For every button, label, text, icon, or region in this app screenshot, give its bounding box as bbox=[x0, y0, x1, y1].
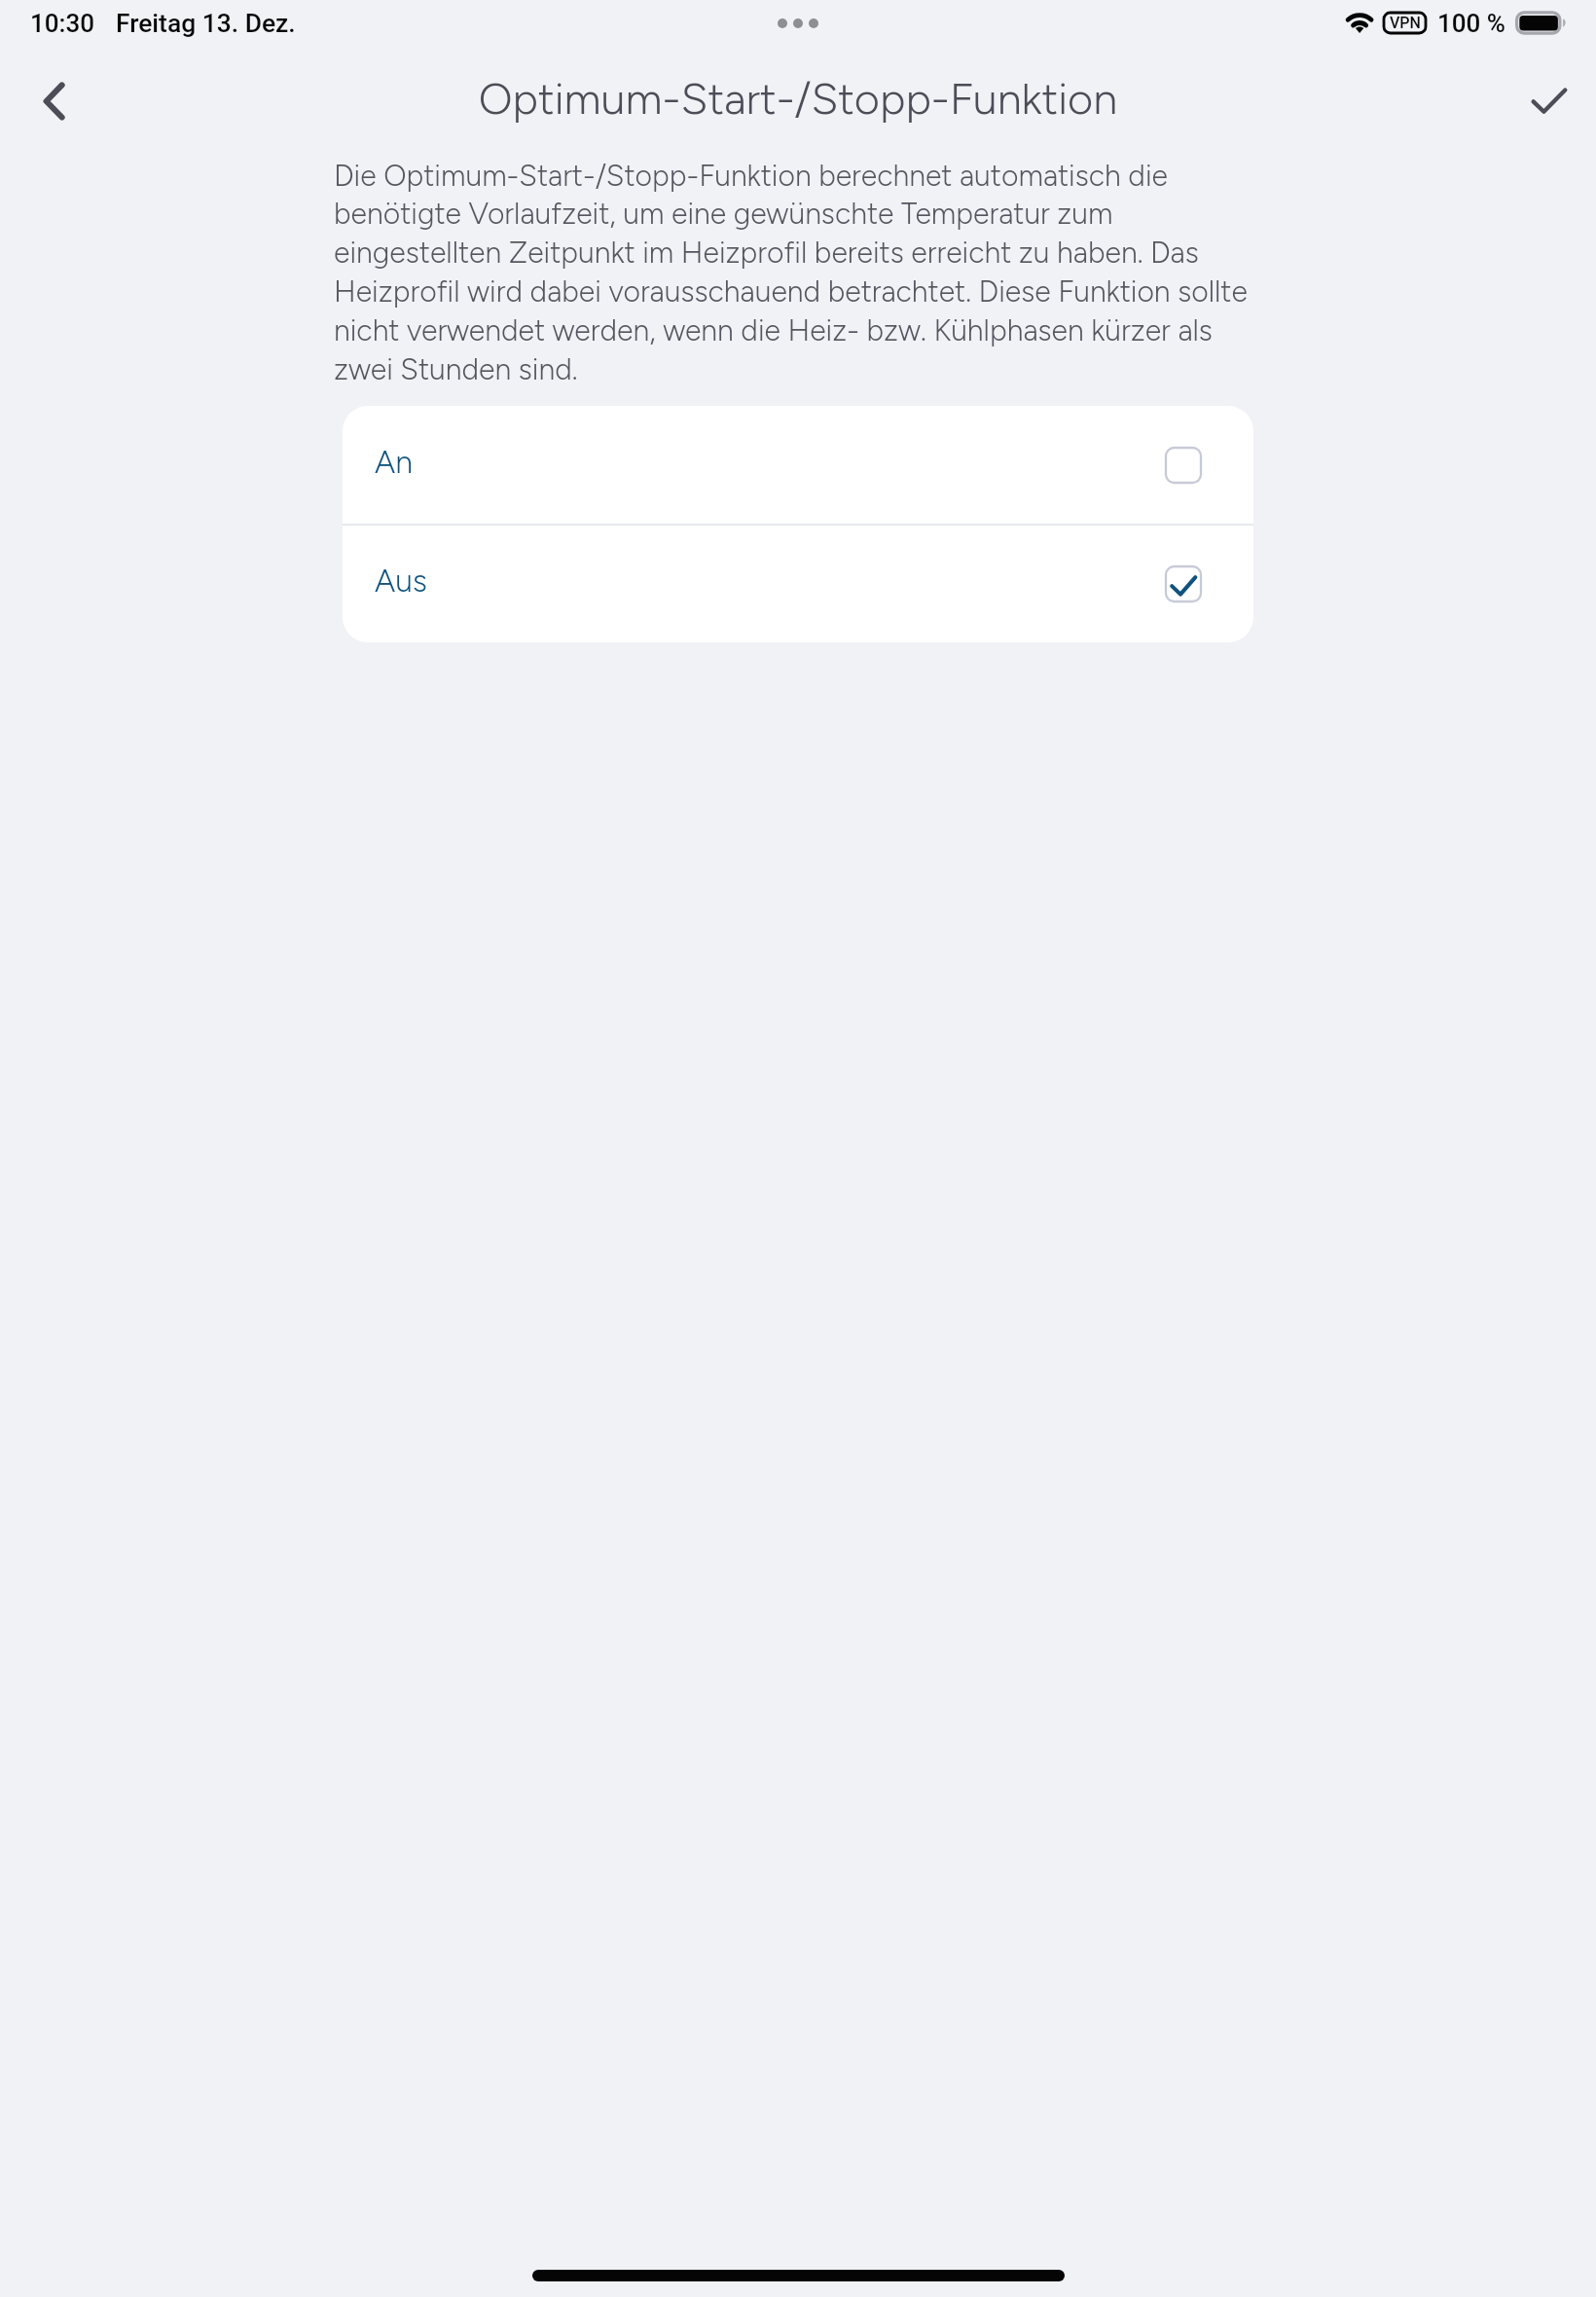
button[interactable]: An bbox=[343, 406, 1253, 524]
staticText: 10:30 bbox=[30, 9, 95, 38]
button[interactable]: Zurück bbox=[19, 66, 90, 136]
staticText: Optimum-Start-/Stopp-Funktion bbox=[0, 72, 1596, 125]
staticText: VPN bbox=[1390, 14, 1421, 32]
staticText: Freitag 13. Dez. bbox=[116, 9, 296, 39]
staticText: Die Optimum-Start-/Stopp-Funktion berech… bbox=[334, 158, 1254, 387]
button[interactable]: Speichern bbox=[1514, 66, 1584, 136]
staticText: An bbox=[375, 444, 413, 481]
staticText: Aus bbox=[375, 563, 427, 600]
button[interactable]: Aus bbox=[343, 526, 1253, 642]
staticText: 100 % bbox=[1437, 9, 1505, 38]
